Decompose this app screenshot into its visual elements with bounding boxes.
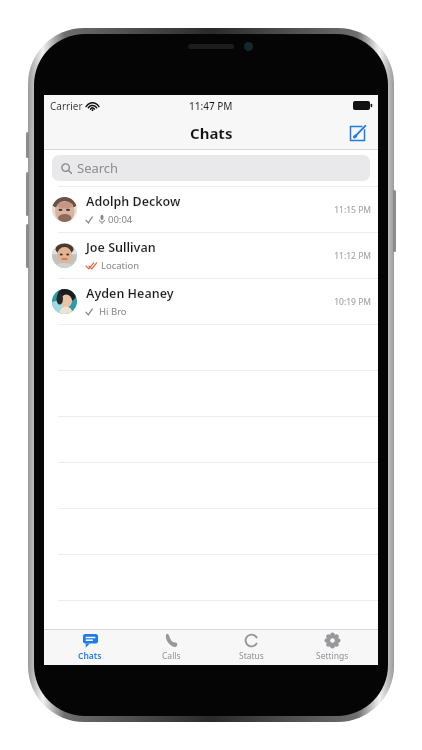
button[interactable]: Compose new message bbox=[342, 118, 372, 148]
staticText: 11:47 PM bbox=[189, 99, 233, 113]
staticText: 11:12 PM bbox=[334, 250, 371, 262]
staticText: Chats bbox=[190, 123, 233, 143]
staticText: 00:04 bbox=[108, 213, 133, 226]
staticText: Adolph Deckow bbox=[86, 193, 181, 210]
staticText: 11:15 PM bbox=[334, 204, 371, 216]
button[interactable]: Joe Sullivan bbox=[44, 233, 378, 278]
staticText: Status bbox=[239, 650, 264, 662]
button[interactable]: Adolph Deckow bbox=[44, 187, 378, 232]
staticText: Hi Bro bbox=[99, 305, 127, 318]
button[interactable]: Calls bbox=[136, 630, 206, 665]
staticText: Chats bbox=[78, 650, 102, 662]
staticText: Carrier bbox=[50, 99, 83, 113]
staticText: Ayden Heaney bbox=[86, 285, 174, 302]
staticText: Calls bbox=[162, 650, 181, 662]
staticText: 10:19 PM bbox=[334, 296, 371, 308]
staticText: Search bbox=[77, 159, 119, 177]
button[interactable]: Search bbox=[52, 155, 370, 181]
staticText: Settings bbox=[316, 650, 349, 662]
button[interactable]: Chats bbox=[55, 630, 125, 665]
button[interactable]: Status bbox=[216, 630, 286, 665]
button[interactable]: Settings bbox=[297, 630, 367, 665]
staticText: Joe Sullivan bbox=[86, 239, 156, 256]
staticText: Location bbox=[101, 259, 140, 272]
button[interactable]: Ayden Heaney bbox=[44, 279, 378, 324]
